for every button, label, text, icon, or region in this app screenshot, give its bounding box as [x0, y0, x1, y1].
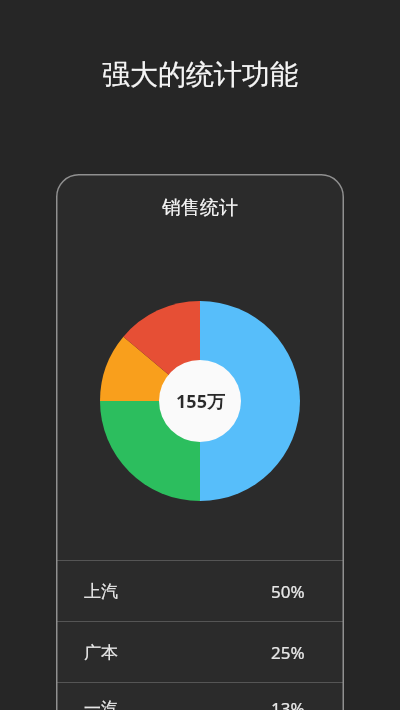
staticText: 50%	[271, 580, 305, 603]
button[interactable]: 一汽	[56, 683, 344, 710]
staticText: 广本	[84, 642, 118, 663]
staticText: 强大的统计功能	[0, 57, 400, 92]
staticText: 一汽	[84, 698, 118, 710]
staticText: 25%	[271, 641, 305, 664]
staticText: 销售统计	[162, 196, 238, 220]
staticText: 上汽	[84, 581, 118, 602]
button[interactable]: 上汽	[56, 561, 344, 621]
staticText: 13%	[271, 697, 305, 710]
button[interactable]: 广本	[56, 622, 344, 682]
staticText: 155万	[176, 389, 225, 414]
